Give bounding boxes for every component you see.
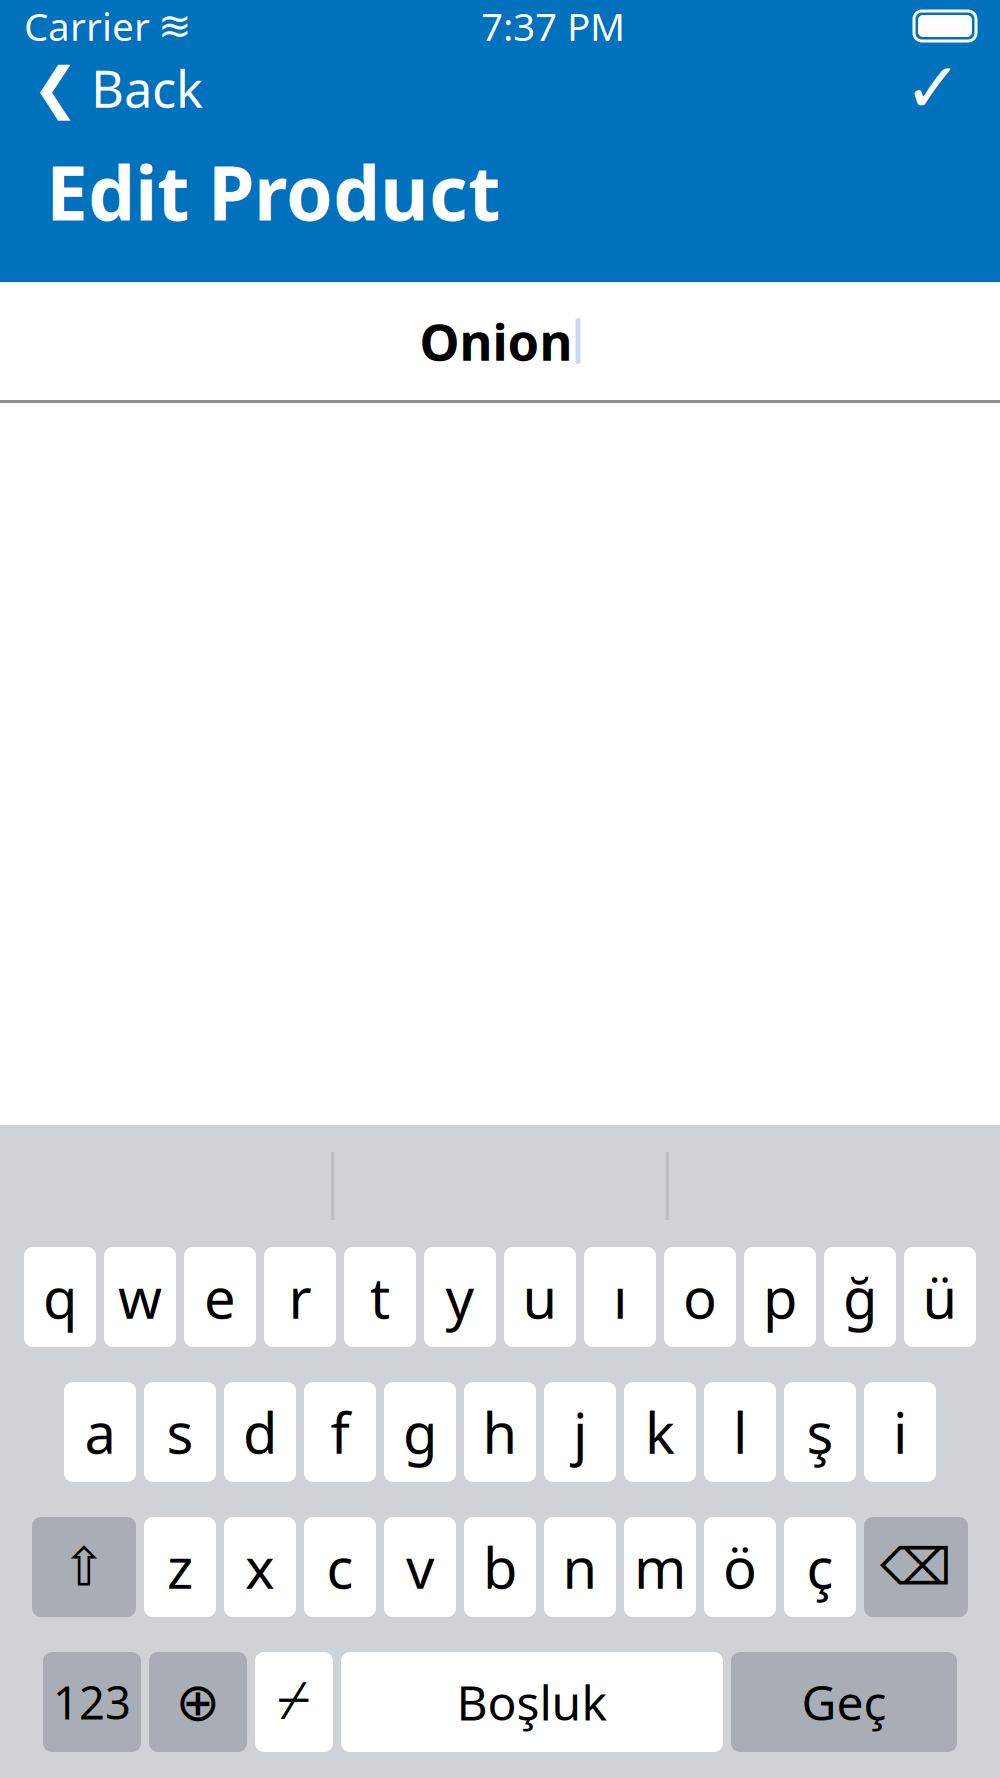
button[interactable]: ü: [904, 1247, 976, 1347]
staticText: s: [166, 1395, 193, 1469]
button[interactable]: h: [464, 1382, 536, 1482]
staticText: v: [406, 1530, 434, 1604]
button[interactable]: c: [304, 1517, 376, 1617]
button[interactable]: w: [104, 1247, 176, 1347]
button[interactable]: y: [424, 1247, 496, 1347]
button[interactable]: t: [344, 1247, 416, 1347]
staticText: n: [562, 1530, 597, 1604]
staticText: Edit Product: [46, 142, 500, 241]
staticText: x: [245, 1530, 275, 1604]
button[interactable]: o: [664, 1247, 736, 1347]
staticText: w: [118, 1260, 162, 1334]
staticText: ü: [922, 1260, 957, 1334]
staticText: ı: [613, 1260, 627, 1334]
button[interactable]: a: [64, 1382, 136, 1482]
staticText: Onion: [419, 307, 572, 375]
staticText: m: [634, 1530, 686, 1604]
staticText: e: [204, 1260, 236, 1334]
button[interactable]: f: [304, 1382, 376, 1482]
button[interactable]: Shift: [32, 1517, 136, 1617]
staticText: Geç: [801, 1670, 886, 1734]
staticText: z: [167, 1530, 193, 1604]
staticText: b: [483, 1530, 517, 1604]
button[interactable]: Delete: [864, 1517, 968, 1617]
button[interactable]: r: [264, 1247, 336, 1347]
staticText: t: [370, 1260, 390, 1334]
button[interactable]: i: [864, 1382, 936, 1482]
button[interactable]: m: [624, 1517, 696, 1617]
button[interactable]: n: [544, 1517, 616, 1617]
button[interactable]: g: [384, 1382, 456, 1482]
button[interactable]: 123: [43, 1652, 141, 1752]
staticText: p: [763, 1260, 797, 1334]
staticText: ✓: [904, 49, 962, 127]
staticText: ≋: [158, 3, 192, 49]
staticText: Carrier: [24, 0, 150, 52]
staticText: a: [84, 1395, 115, 1469]
button[interactable]: x: [224, 1517, 296, 1617]
staticText: d: [243, 1395, 277, 1469]
button[interactable]: Save: [882, 52, 984, 124]
staticText: h: [482, 1395, 517, 1469]
button[interactable]: u: [504, 1247, 576, 1347]
button[interactable]: ❮: [16, 52, 219, 124]
button[interactable]: v: [384, 1517, 456, 1617]
staticText: ⌿: [278, 1676, 310, 1728]
button[interactable]: ş: [784, 1382, 856, 1482]
button[interactable]: z: [144, 1517, 216, 1617]
button[interactable]: Next keyboard: [149, 1652, 247, 1752]
staticText: o: [683, 1260, 717, 1334]
button[interactable]: e: [184, 1247, 256, 1347]
staticText: ş: [806, 1395, 833, 1469]
button[interactable]: k: [624, 1382, 696, 1482]
staticText: r: [288, 1260, 311, 1334]
staticText: l: [733, 1395, 747, 1469]
button[interactable]: j: [544, 1382, 616, 1482]
staticText: ç: [806, 1530, 833, 1604]
staticText: u: [522, 1260, 557, 1334]
staticText: k: [645, 1395, 675, 1469]
button[interactable]: Boşluk: [341, 1652, 723, 1752]
staticText: ğ: [843, 1260, 877, 1334]
staticText: ⊕: [175, 1672, 220, 1732]
staticText: ⌫: [880, 1538, 952, 1596]
button[interactable]: l: [704, 1382, 776, 1482]
button[interactable]: p: [744, 1247, 816, 1347]
button[interactable]: ğ: [824, 1247, 896, 1347]
button[interactable]: d: [224, 1382, 296, 1482]
button[interactable]: ç: [784, 1517, 856, 1617]
staticText: y: [445, 1260, 474, 1334]
staticText: j: [573, 1395, 587, 1469]
button[interactable]: Geç: [731, 1652, 957, 1752]
button[interactable]: ı: [584, 1247, 656, 1347]
staticText: Boşluk: [456, 1670, 607, 1734]
button[interactable]: Dictation: [255, 1652, 333, 1752]
staticText: g: [403, 1395, 437, 1469]
staticText: i: [893, 1395, 907, 1469]
staticText: Back: [91, 54, 203, 122]
button[interactable]: q: [24, 1247, 96, 1347]
staticText: 7:37 PM: [481, 0, 625, 52]
staticText: q: [43, 1260, 77, 1334]
staticText: ö: [723, 1530, 757, 1604]
staticText: ⇧: [61, 1537, 106, 1597]
staticText: ❮: [32, 56, 79, 120]
button[interactable]: ö: [704, 1517, 776, 1617]
staticText: 123: [53, 1672, 131, 1732]
button[interactable]: s: [144, 1382, 216, 1482]
button[interactable]: b: [464, 1517, 536, 1617]
staticText: c: [326, 1530, 353, 1604]
staticText: f: [330, 1395, 349, 1469]
